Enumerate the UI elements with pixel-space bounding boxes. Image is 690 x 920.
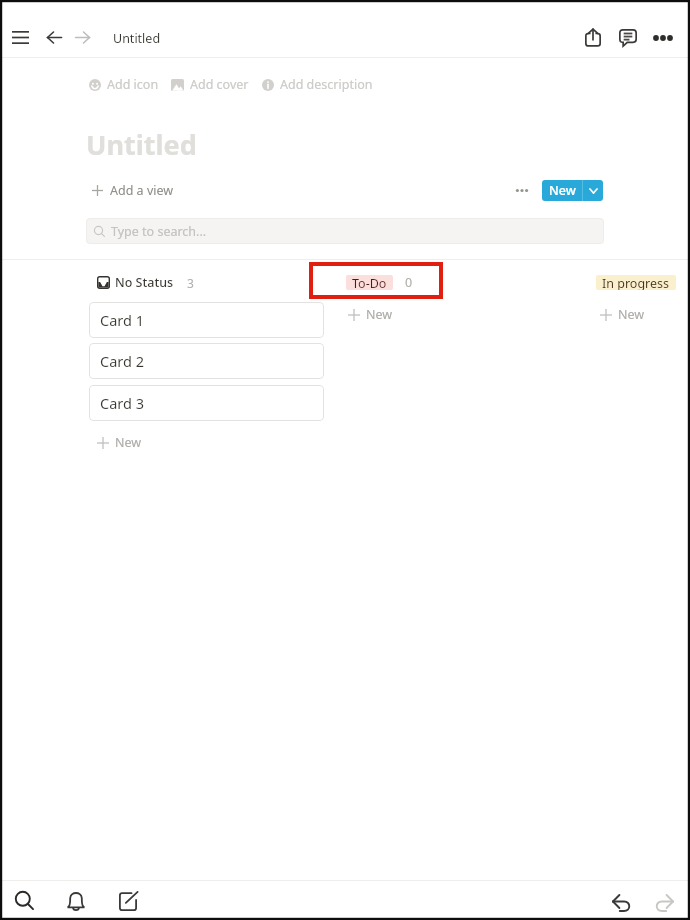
button[interactable]: Comments	[611, 21, 645, 55]
button[interactable]: Search	[7, 883, 41, 917]
button[interactable]: Notifications	[59, 884, 93, 918]
staticText: New	[366, 306, 393, 323]
button[interactable]: Forward	[66, 21, 98, 53]
staticText: Untitled	[113, 30, 161, 47]
button[interactable]: To-Do	[346, 274, 413, 291]
button[interactable]: New page	[111, 884, 145, 918]
button[interactable]: Type to search...	[86, 218, 604, 244]
button[interactable]: New options	[583, 180, 603, 201]
staticText: Card 2	[100, 351, 144, 371]
staticText: Add description	[280, 76, 373, 93]
button[interactable]: View options	[510, 178, 534, 202]
button[interactable]: Card 2	[89, 343, 324, 379]
staticText: 3	[187, 275, 194, 291]
button[interactable]: New	[542, 180, 582, 201]
staticText: Add icon	[107, 76, 159, 93]
staticText: Type to search...	[111, 223, 207, 240]
staticText: New	[115, 434, 142, 451]
button[interactable]: New	[348, 306, 393, 323]
staticText: Untitled	[86, 126, 197, 163]
staticText: New	[549, 182, 576, 199]
button[interactable]: In progress	[596, 274, 690, 291]
button[interactable]: Redo	[647, 884, 681, 918]
button[interactable]: Share	[576, 20, 610, 54]
staticText: Card 1	[100, 310, 144, 330]
button[interactable]: Add a view	[92, 182, 174, 199]
staticText: 0	[405, 274, 413, 291]
button[interactable]: Add cover	[171, 76, 249, 93]
button[interactable]: Menu	[3, 20, 37, 54]
button[interactable]: New	[97, 434, 142, 451]
button[interactable]: Undo	[604, 884, 638, 918]
staticText: To-Do	[352, 275, 387, 290]
staticText: New	[618, 306, 645, 323]
staticText: Card 3	[100, 393, 144, 413]
button[interactable]: More options	[646, 21, 680, 55]
button[interactable]: New	[600, 306, 645, 323]
button[interactable]: No Status	[97, 274, 194, 291]
button[interactable]: Card 1	[89, 302, 324, 338]
staticText: Add cover	[190, 76, 249, 93]
button[interactable]: Add icon	[89, 76, 159, 93]
button[interactable]: Back	[38, 21, 70, 53]
button[interactable]: Card 3	[89, 385, 324, 421]
button[interactable]: Add description	[262, 76, 373, 93]
staticText: In progress	[602, 275, 670, 290]
staticText: No Status	[115, 274, 174, 291]
staticText: Add a view	[110, 182, 174, 199]
